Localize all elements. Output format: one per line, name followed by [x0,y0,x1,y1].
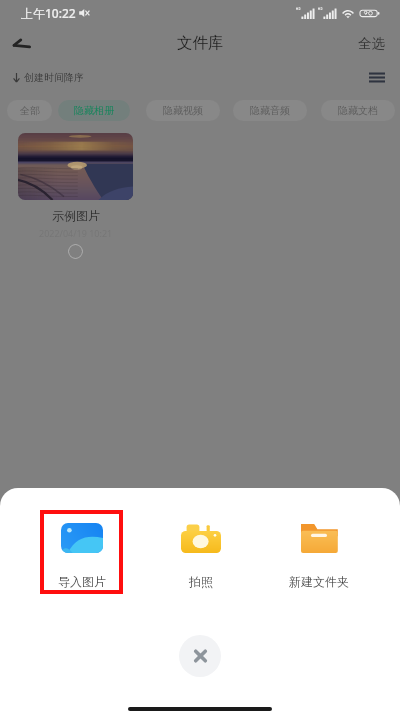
button[interactable]: 全选 [346,31,400,56]
staticText: 导入图片 [58,574,106,589]
staticText: 隐藏文档 [338,104,378,117]
button[interactable]: 选择 [68,244,83,259]
button[interactable]: 创建时间降序 [0,67,90,88]
staticText: 隐藏音频 [250,104,290,117]
button[interactable]: 示例图片 [18,133,133,200]
button[interactable]: 切换列表视图 [364,64,390,90]
button[interactable]: 返回 [6,30,36,56]
button[interactable]: 隐藏文档 [321,100,395,121]
staticText: 拍照 [189,574,213,589]
staticText: 全选 [358,35,385,52]
button[interactable]: 关闭 [179,635,221,677]
staticText: 创建时间降序 [24,71,84,84]
staticText: 上午10:22 [21,5,76,21]
staticText: 文件库 [177,33,224,53]
button[interactable]: 隐藏相册 [58,100,130,121]
button[interactable]: 全部 [7,100,52,121]
button[interactable]: 导入图片 [40,510,123,594]
staticText: 隐藏视频 [163,104,203,117]
button[interactable]: 新建文件夹 [277,510,360,594]
button[interactable]: 隐藏音频 [233,100,307,121]
staticText: 示例图片 [52,208,100,223]
staticText: 新建文件夹 [289,574,349,589]
staticText: 隐藏相册 [74,104,114,117]
staticText: 全部 [20,104,40,117]
button[interactable]: 隐藏视频 [146,100,220,121]
button[interactable]: 拍照 [159,510,242,594]
